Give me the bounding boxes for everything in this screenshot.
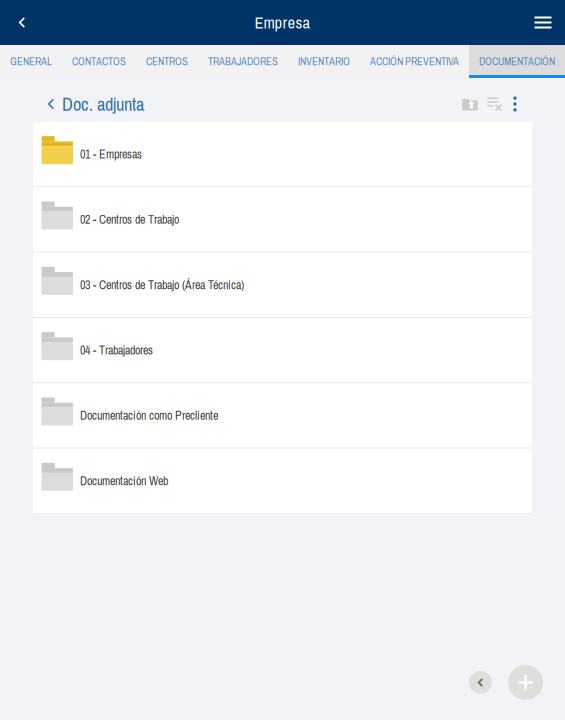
button[interactable]: CONTACTOS — [62, 45, 136, 78]
button[interactable]: Documentación como Precliente — [33, 383, 532, 448]
button[interactable]: CENTROS — [136, 45, 198, 78]
staticText: DOCUMENTACIÓN — [479, 54, 555, 69]
staticText: INVENTARIO — [298, 54, 350, 69]
button[interactable]: Previous page — [469, 671, 492, 694]
button[interactable]: 03 - Centros de Trabajo (Área Técnica) — [33, 253, 532, 317]
button[interactable]: 02 - Centros de Trabajo — [33, 187, 532, 252]
staticText: Doc. adjunta — [62, 92, 144, 116]
button[interactable]: DOCUMENTACIÓN — [469, 45, 565, 78]
button[interactable]: Add — [508, 665, 543, 700]
button[interactable]: Menu — [521, 0, 565, 45]
staticText: TRABAJADORES — [208, 54, 278, 69]
button[interactable]: INVENTARIO — [288, 45, 360, 78]
button[interactable]: TRABAJADORES — [198, 45, 288, 78]
button[interactable]: 04 - Trabajadores — [33, 318, 532, 382]
button[interactable]: Upload folder — [460, 91, 484, 117]
staticText: 02 - Centros de Trabajo — [80, 211, 179, 228]
button[interactable]: ACCIÓN PREVENTIVA — [360, 45, 469, 78]
staticText: CONTACTOS — [72, 54, 126, 69]
staticText: Documentación Web — [80, 473, 168, 489]
button[interactable]: Clear filter — [484, 91, 506, 117]
staticText: 01 - Empresas — [80, 146, 142, 162]
staticText: CENTROS — [146, 54, 188, 69]
staticText: Documentación como Precliente — [80, 407, 218, 424]
button[interactable]: More options — [506, 91, 524, 117]
staticText: 03 - Centros de Trabajo (Área Técnica) — [80, 277, 244, 293]
button[interactable]: GENERAL — [0, 45, 62, 78]
staticText: 04 - Trabajadores — [80, 342, 153, 358]
button[interactable]: Back — [0, 0, 44, 45]
button[interactable]: Documentación Web — [33, 449, 532, 513]
staticText: ACCIÓN PREVENTIVA — [370, 54, 459, 69]
button[interactable]: Doc. adjunta — [0, 92, 144, 116]
staticText: Empresa — [254, 11, 310, 34]
button[interactable]: 01 - Empresas — [33, 122, 532, 186]
staticText: GENERAL — [10, 54, 52, 69]
